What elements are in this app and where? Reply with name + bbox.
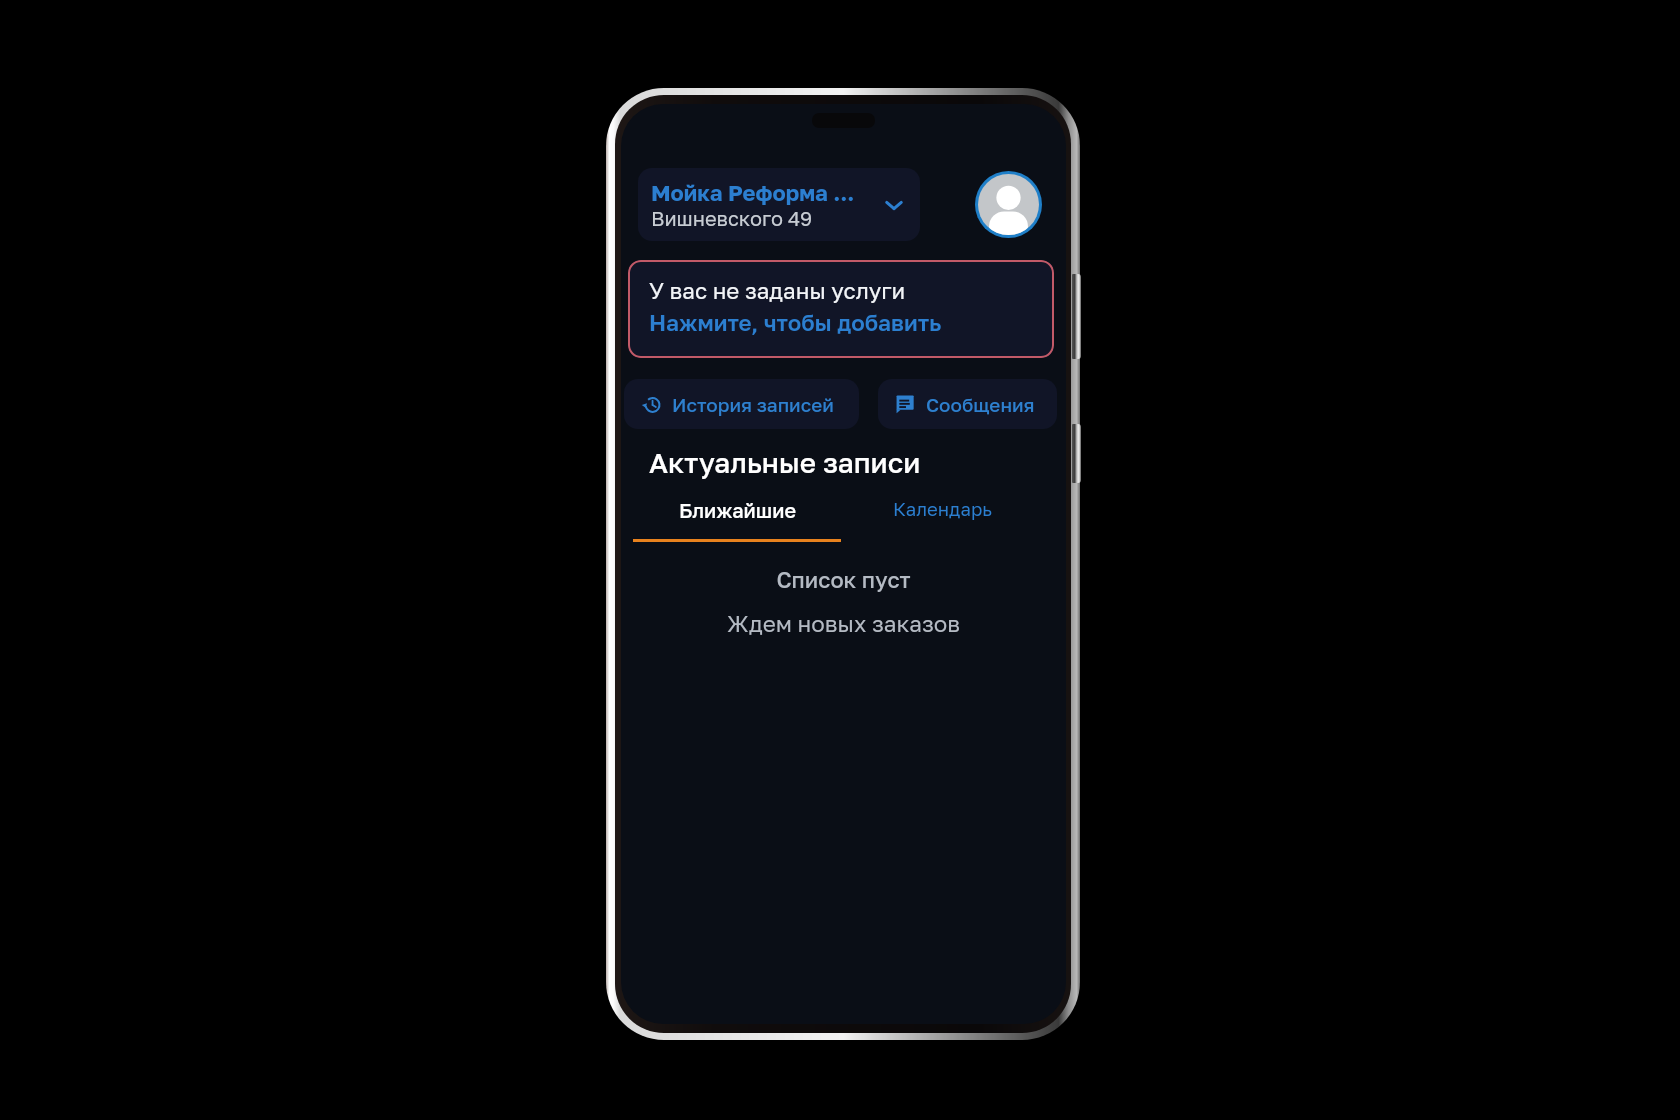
staticText: Вишневского 49 bbox=[651, 206, 813, 230]
staticText: Мойка Реформа ... bbox=[651, 179, 855, 205]
staticText: История записей bbox=[672, 393, 834, 416]
staticText: Ближайшие bbox=[679, 498, 796, 522]
button[interactable]: Profile bbox=[975, 171, 1042, 238]
staticText: Сообщения bbox=[926, 393, 1035, 416]
button[interactable]: Сообщения bbox=[878, 379, 1057, 429]
button[interactable]: Мойка Реформа ... bbox=[638, 168, 920, 241]
staticText: У вас не заданы услуги bbox=[649, 277, 906, 304]
staticText: Актуальные записи bbox=[649, 446, 921, 480]
button[interactable]: Календарь bbox=[847, 498, 1037, 520]
staticText: Нажмите, чтобы добавить bbox=[649, 309, 942, 336]
button[interactable]: У вас не заданы услуги bbox=[628, 260, 1054, 358]
staticText: Ждем новых заказов bbox=[621, 610, 1066, 637]
staticText: Календарь bbox=[893, 498, 992, 520]
button[interactable]: История записей bbox=[624, 379, 859, 429]
button[interactable]: Ближайшие bbox=[633, 498, 841, 542]
staticText: Список пуст bbox=[621, 566, 1066, 592]
